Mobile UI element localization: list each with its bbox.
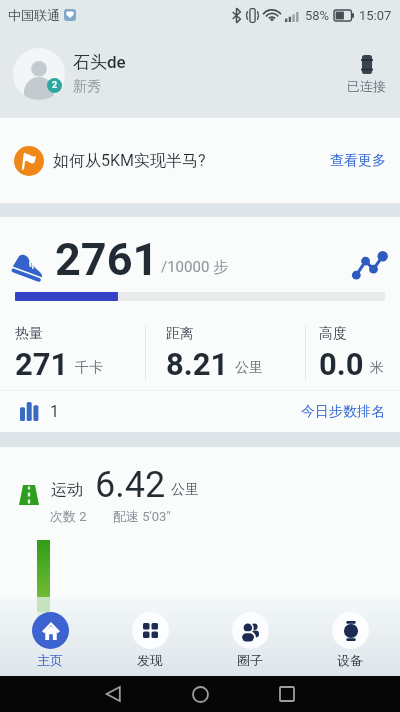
button[interactable]: 2761 <box>0 217 400 432</box>
staticText: 8.21 <box>166 346 229 382</box>
staticText: 圈子 <box>237 652 263 668</box>
staticText: 新秀 <box>73 78 101 96</box>
button[interactable]: 主页 <box>0 597 100 676</box>
staticText: /10000 步 <box>161 258 229 277</box>
staticText: 高度 <box>319 325 347 343</box>
staticText: 15:07 <box>359 8 392 23</box>
button[interactable]: 运动 <box>0 447 400 712</box>
staticText: 公里 <box>235 359 263 377</box>
staticText: 发现 <box>137 652 163 668</box>
button[interactable] <box>361 55 373 74</box>
staticText: 已连接 <box>347 78 386 94</box>
button[interactable]: 2 <box>13 48 65 100</box>
staticText: 查看更多 <box>330 152 386 170</box>
staticText: 今日步数排名 <box>301 403 385 421</box>
button[interactable]: 如何从5KM实现半马? <box>0 118 400 203</box>
staticText: 0.0 <box>319 346 364 382</box>
button[interactable]: 1 <box>0 391 400 432</box>
staticText: 1 <box>50 402 59 421</box>
staticText: 公里 <box>171 481 199 499</box>
staticText: 58% <box>305 8 330 23</box>
staticText: 中国联通 <box>8 7 60 23</box>
button[interactable]: 发现 <box>100 597 200 676</box>
button[interactable] <box>270 677 304 711</box>
staticText: 2761 <box>55 233 159 286</box>
staticText: 米 <box>370 359 384 377</box>
staticText: 配速 5'03" <box>113 508 171 524</box>
button[interactable]: 设备 <box>300 597 400 676</box>
staticText: 次数 2 <box>50 508 87 524</box>
staticText: 271 <box>15 346 69 382</box>
staticText: 设备 <box>337 652 363 668</box>
staticText: 运动 <box>51 480 83 500</box>
staticText: 6.42 <box>95 464 166 506</box>
staticText: 石头de <box>73 52 126 73</box>
staticText: 主页 <box>37 652 63 668</box>
button[interactable] <box>96 677 130 711</box>
staticText: 距离 <box>166 325 194 343</box>
staticText: 如何从5KM实现半马? <box>53 151 206 171</box>
staticText: 2 <box>52 80 58 91</box>
staticText: 千卡 <box>75 359 103 377</box>
button[interactable] <box>183 677 217 711</box>
staticText: 热量 <box>15 325 43 343</box>
button[interactable]: 圈子 <box>200 597 300 676</box>
